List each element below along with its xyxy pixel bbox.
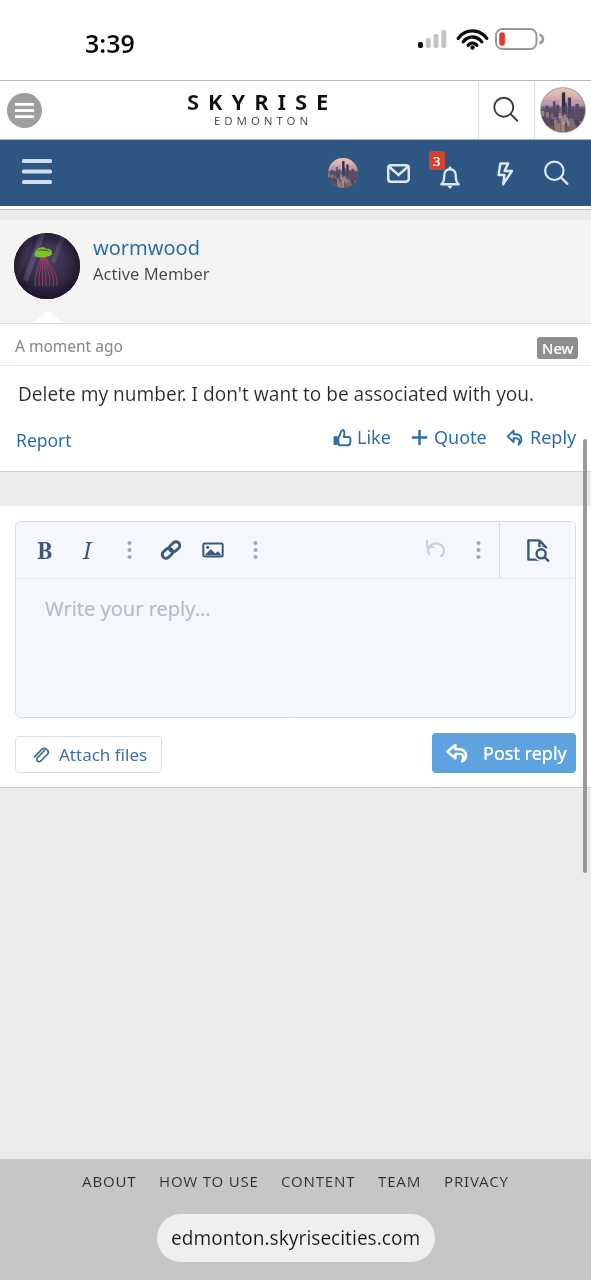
button[interactable]: Report: [16, 428, 72, 452]
staticText: ABOUT: [82, 1171, 137, 1191]
button[interactable]: More options: [457, 521, 499, 578]
button[interactable]: TEAM: [367, 1171, 433, 1191]
staticText: Like: [357, 425, 391, 450]
button[interactable]: Attach files: [15, 736, 162, 773]
staticText: New: [542, 338, 574, 358]
staticText: Post reply: [483, 741, 567, 766]
button[interactable]: Whats new: [482, 144, 528, 202]
button[interactable]: Quote: [410, 425, 487, 450]
button[interactable]: Open navigation: [10, 144, 65, 202]
button[interactable]: Alerts: [427, 144, 473, 202]
button[interactable]: Search: [534, 144, 580, 202]
button[interactable]: Insert image: [192, 521, 234, 578]
staticText: I: [83, 534, 92, 565]
button[interactable]: Italic: [66, 521, 108, 578]
button[interactable]: Menu: [7, 93, 42, 128]
staticText: Attach files: [59, 743, 148, 766]
staticText: Active Member: [93, 262, 210, 284]
button[interactable]: More text options: [108, 521, 150, 578]
staticText: B: [37, 534, 53, 565]
staticText: Reply: [530, 425, 577, 450]
button[interactable]: edmonton.skyrisecities.com: [157, 1214, 435, 1262]
staticText: Delete my number. I don't want to be ass…: [18, 381, 535, 407]
staticText: CONTENT: [281, 1171, 356, 1191]
button[interactable]: Account: [535, 81, 591, 139]
button[interactable]: Profile: [320, 144, 366, 202]
button[interactable]: ABOUT: [71, 1171, 148, 1191]
staticText: HOW TO USE: [159, 1171, 259, 1191]
button[interactable]: Inbox: [375, 144, 421, 202]
staticText: TEAM: [378, 1171, 422, 1191]
button[interactable]: Like: [333, 425, 391, 450]
staticText: PRIVACY: [444, 1171, 509, 1191]
staticText: Quote: [434, 425, 487, 450]
button[interactable]: More insert options: [234, 521, 276, 578]
staticText: Write your reply...: [45, 595, 211, 622]
button[interactable]: Undo: [415, 521, 457, 578]
button[interactable]: PRIVACY: [433, 1171, 520, 1191]
button[interactable]: Post reply: [432, 733, 576, 773]
button[interactable]: Bold: [24, 521, 66, 578]
button[interactable]: wormwood avatar: [14, 233, 80, 299]
button[interactable]: Search: [479, 81, 534, 139]
button[interactable]: Write your reply...: [15, 579, 576, 718]
staticText: 3:39: [85, 26, 135, 60]
staticText: 3: [433, 152, 441, 170]
staticText: EDMONTON: [214, 113, 313, 129]
button[interactable]: CONTENT: [270, 1171, 367, 1191]
button[interactable]: New: [537, 337, 578, 359]
button[interactable]: wormwood: [93, 234, 200, 261]
button[interactable]: Reply: [506, 425, 577, 450]
staticText: A moment ago: [15, 335, 123, 356]
button[interactable]: HOW TO USE: [148, 1171, 270, 1191]
staticText: SKYRISE: [187, 86, 338, 116]
button[interactable]: Insert link: [150, 521, 192, 578]
button[interactable]: Preview: [500, 521, 576, 578]
staticText: edmonton.skyrisecities.com: [171, 1225, 421, 1251]
